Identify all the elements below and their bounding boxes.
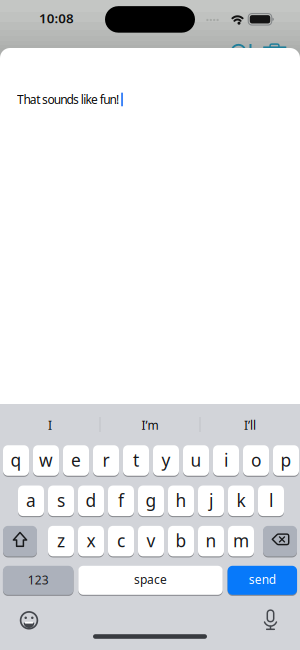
button[interactable]: l (258, 486, 284, 516)
button[interactable]: b (168, 526, 194, 556)
button[interactable]: a (18, 486, 44, 516)
staticText: That sounds like fun! (17, 91, 119, 107)
staticText: q (10, 448, 21, 471)
button[interactable]: space (78, 566, 223, 595)
button[interactable]: I (2, 410, 98, 440)
button[interactable]: y (153, 445, 179, 476)
button[interactable]: r (93, 445, 119, 476)
button[interactable]: n (198, 526, 224, 556)
button[interactable]: t (123, 445, 149, 476)
staticText: 123 (28, 572, 49, 588)
staticText: w (39, 448, 53, 471)
staticText: m (233, 529, 249, 552)
button[interactable]: e (63, 445, 89, 476)
button[interactable]: Shift (0, 526, 40, 556)
staticText: s (57, 489, 65, 512)
staticText: t (133, 448, 139, 471)
staticText: v (146, 529, 155, 552)
button[interactable]: u (183, 445, 209, 476)
button[interactable]: x (78, 526, 104, 556)
button[interactable]: h (168, 486, 194, 516)
button[interactable]: p (273, 445, 299, 476)
button[interactable]: f (108, 486, 134, 516)
staticText: y (161, 448, 170, 471)
staticText: i (224, 448, 228, 471)
button[interactable]: s (48, 486, 74, 516)
button[interactable]: I’ll (202, 410, 298, 440)
button[interactable]: c (108, 526, 134, 556)
staticText: k (236, 489, 245, 512)
staticText: send (249, 571, 276, 587)
button[interactable]: Emoji (14, 605, 44, 635)
button[interactable]: Delete (263, 526, 297, 556)
staticText: f (118, 489, 124, 512)
staticText: g (145, 489, 156, 512)
staticText: b (175, 529, 186, 552)
staticText: l (269, 489, 273, 512)
staticText: p (280, 448, 291, 471)
staticText: I (48, 417, 52, 433)
staticText: h (175, 489, 186, 512)
button[interactable]: k (228, 486, 254, 516)
button[interactable]: w (33, 445, 59, 476)
staticText: space (134, 571, 167, 587)
staticText: c (117, 529, 125, 552)
button[interactable]: Dictation (255, 605, 285, 635)
button[interactable]: z (48, 526, 74, 556)
staticText: u (190, 448, 201, 471)
button[interactable]: v (138, 526, 164, 556)
staticText: a (26, 489, 36, 512)
button[interactable]: q (3, 445, 29, 476)
button[interactable]: I’m (102, 410, 198, 440)
staticText: n (205, 529, 216, 552)
button[interactable]: send (228, 566, 297, 595)
staticText: e (71, 448, 81, 471)
button[interactable]: g (138, 486, 164, 516)
button[interactable]: d (78, 486, 104, 516)
staticText: 10:08 (39, 9, 74, 27)
staticText: r (102, 448, 109, 471)
button[interactable]: m (228, 526, 254, 556)
button[interactable]: 123 (3, 566, 73, 595)
staticText: z (57, 529, 65, 552)
staticText: I’ll (244, 417, 256, 433)
staticText: I’m (141, 417, 158, 433)
staticText: j (209, 489, 213, 512)
staticText: o (251, 448, 261, 471)
button[interactable]: o (243, 445, 269, 476)
staticText: d (85, 489, 96, 512)
button[interactable]: i (213, 445, 239, 476)
button[interactable]: j (198, 486, 224, 516)
staticText: x (86, 529, 95, 552)
